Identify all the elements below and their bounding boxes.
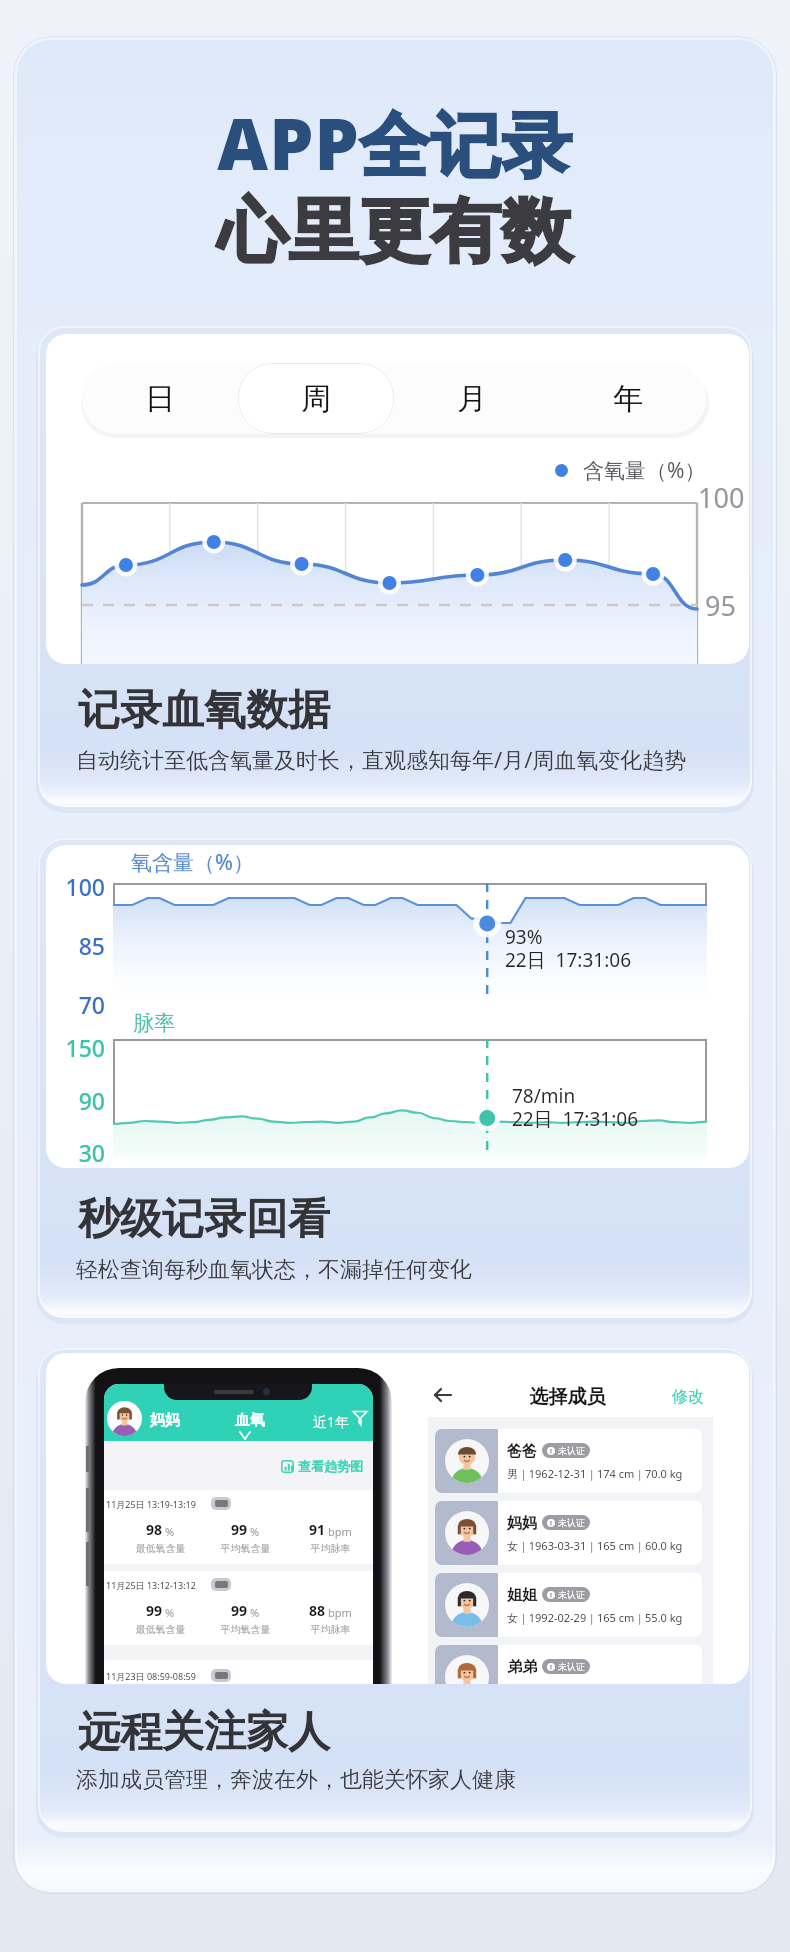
button[interactable]: 周 — [238, 363, 394, 434]
staticText: 女｜1992-02-29｜165 cm｜55.0 kg — [507, 1610, 683, 1625]
staticText: 88 — [309, 1601, 326, 1620]
staticText: % — [165, 1524, 175, 1539]
staticText: 妈妈 — [507, 1514, 537, 1533]
staticText: 记录血氧数据 — [78, 684, 330, 737]
staticText: 最低氧含量 — [118, 1542, 203, 1555]
staticText: 平均氧含量 — [203, 1623, 288, 1636]
staticText: 30 — [46, 1137, 105, 1168]
staticText: 平均氧含量 — [203, 1542, 288, 1555]
staticText: 选择成员 — [428, 1385, 710, 1409]
staticText: 最低氧含量 — [118, 1623, 203, 1636]
staticText: APP全记录 — [0, 95, 790, 191]
staticText: 22日 17:31:06 — [512, 1106, 639, 1132]
staticText: 姐姐 — [507, 1586, 537, 1605]
staticText: 血氧 — [235, 1411, 265, 1430]
button[interactable]: Back — [430, 1382, 456, 1408]
staticText: % — [250, 1605, 260, 1620]
staticText: 弟弟 — [507, 1658, 537, 1677]
button[interactable]: 爸爸 — [435, 1429, 702, 1493]
staticText: 月 — [457, 380, 487, 418]
staticText: bpm — [328, 1524, 352, 1539]
staticText: % — [165, 1605, 175, 1620]
staticText: 年 — [613, 380, 643, 418]
staticText: 150 — [46, 1032, 105, 1063]
staticText: 平均脉率 — [288, 1623, 373, 1636]
staticText: 自动统计至低含氧量及时长，直观感知每年/月/周血氧变化趋势 — [76, 744, 687, 774]
staticText: 99 — [146, 1601, 163, 1620]
staticText: 78/min — [512, 1083, 576, 1109]
staticText: 远程关注家人 — [78, 1706, 330, 1759]
staticText: 98 — [146, 1520, 163, 1539]
staticText: 女｜1963-03-31｜165 cm｜60.0 kg — [507, 1538, 683, 1553]
button[interactable]: Filter — [352, 1410, 368, 1426]
staticText: 妈妈 — [150, 1411, 180, 1430]
button[interactable]: 妈妈 — [435, 1501, 702, 1565]
staticText: 含氧量（%） — [583, 456, 706, 485]
staticText: 90 — [46, 1085, 105, 1116]
staticText: 91 — [309, 1520, 326, 1539]
staticText: 氧含量（%） — [131, 848, 254, 877]
staticText: 100 — [698, 479, 745, 516]
staticText: 70 — [46, 989, 105, 1020]
staticText: 近1年 — [313, 1412, 350, 1431]
staticText: 未认证 — [558, 1661, 585, 1672]
staticText: bpm — [328, 1605, 352, 1620]
button[interactable]: 查看趋势图 — [281, 1458, 363, 1474]
button[interactable]: 弟弟 — [435, 1645, 702, 1684]
staticText: 未认证 — [558, 1589, 585, 1600]
staticText: 11月25日 13:12-13:12 — [106, 1579, 196, 1591]
staticText: 99 — [231, 1520, 248, 1539]
staticText: 未认证 — [558, 1517, 585, 1528]
button[interactable]: 日 — [82, 363, 238, 434]
staticText: 男｜1962-12-31｜174 cm｜70.0 kg — [507, 1466, 683, 1481]
staticText: 轻松查询每秒血氧状态，不漏掉任何变化 — [76, 1256, 472, 1284]
staticText: 心里更有数 — [0, 188, 790, 276]
staticText: 平均脉率 — [288, 1542, 373, 1555]
staticText: % — [250, 1524, 260, 1539]
staticText: 日 — [145, 380, 175, 418]
staticText: 未认证 — [558, 1445, 585, 1456]
staticText: 100 — [46, 871, 105, 902]
staticText: 99 — [231, 1601, 248, 1620]
staticText: 查看趋势图 — [298, 1458, 363, 1474]
staticText: 秒级记录回看 — [78, 1193, 330, 1246]
staticText: 85 — [46, 930, 105, 961]
staticText: 95 — [705, 587, 736, 624]
staticText: 周 — [301, 380, 331, 418]
button[interactable]: 年 — [550, 363, 706, 434]
staticText: 脉率 — [133, 1010, 175, 1036]
staticText: 11月23日 08:59-08:59 — [106, 1670, 196, 1682]
staticText: 添加成员管理，奔波在外，也能关怀家人健康 — [76, 1766, 516, 1794]
button[interactable]: 月 — [394, 363, 550, 434]
staticText: 22日 17:31:06 — [505, 947, 632, 973]
staticText: 爸爸 — [507, 1442, 537, 1461]
staticText: 修改 — [672, 1387, 704, 1407]
button[interactable]: 姐姐 — [435, 1573, 702, 1637]
staticText: 93% — [505, 924, 543, 950]
staticText: 11月25日 13:19-13:19 — [106, 1498, 196, 1510]
